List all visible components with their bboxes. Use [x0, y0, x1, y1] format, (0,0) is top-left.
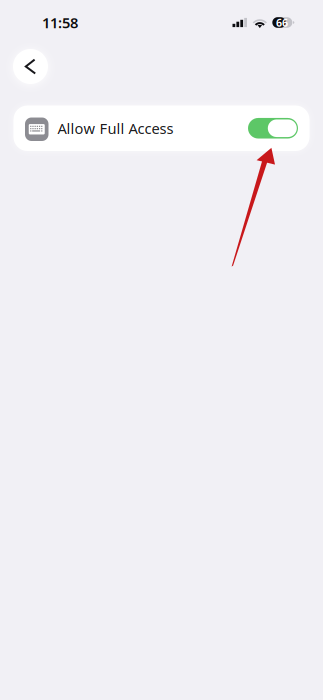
button[interactable]: Back: [13, 49, 48, 84]
staticText: 11:58: [42, 13, 78, 32]
staticText: 66: [276, 15, 288, 30]
button[interactable]: Allow Full Access: [13, 105, 309, 151]
staticText: Allow Full Access: [57, 118, 173, 138]
